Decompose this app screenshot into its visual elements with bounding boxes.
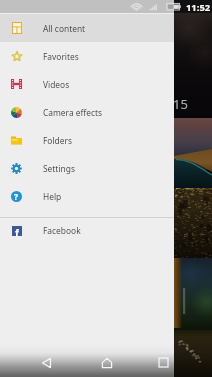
button[interactable]: ? <box>0 182 174 210</box>
staticText: 11:52 <box>186 1 211 14</box>
button[interactable]: Home <box>93 349 120 376</box>
staticText: Facebook <box>43 225 81 236</box>
staticText: ? <box>14 191 19 202</box>
staticText: Videos <box>43 79 70 90</box>
button[interactable]: Back <box>33 349 60 376</box>
button[interactable]: Recent apps <box>150 349 177 376</box>
staticText: Camera effects <box>43 107 103 118</box>
button[interactable]: All content <box>0 14 174 42</box>
button[interactable]: Videos <box>0 70 174 98</box>
button[interactable]: Camera effects <box>0 98 174 126</box>
button[interactable]: Folders <box>0 126 174 154</box>
button[interactable]: Settings <box>0 154 174 182</box>
staticText: Settings <box>43 163 75 174</box>
staticText: Folders <box>43 135 72 146</box>
button[interactable]: f <box>0 218 174 243</box>
staticText: Favorites <box>43 51 79 62</box>
staticText: 15 <box>173 95 188 113</box>
staticText: Help <box>43 191 62 202</box>
staticText: f <box>15 226 19 236</box>
button[interactable]: Favorites <box>0 42 174 70</box>
staticText: All content <box>43 23 86 34</box>
